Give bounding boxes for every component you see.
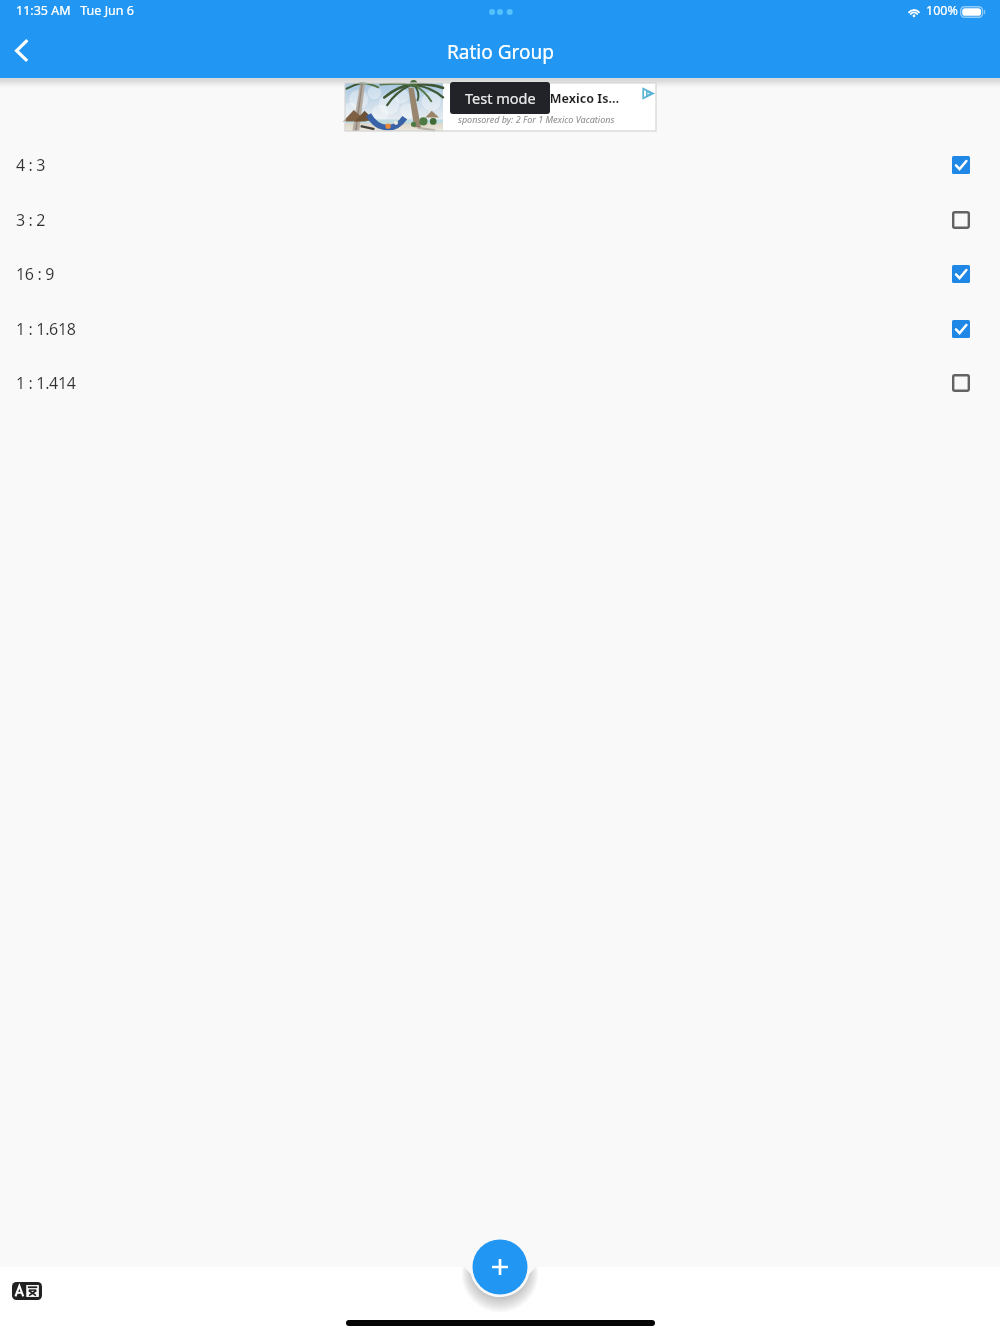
staticText: 1 : 1.618 bbox=[16, 318, 76, 340]
staticText: 100% bbox=[926, 2, 958, 19]
staticText: Flights to Mexico Is… bbox=[488, 90, 620, 107]
button[interactable]: 1 : 1.618 bbox=[0, 301, 1000, 356]
button[interactable]: Flights to Mexico Is… bbox=[345, 83, 656, 131]
button[interactable]: Translate bbox=[12, 1282, 42, 1300]
button[interactable]: 16 : 9 bbox=[0, 246, 1000, 301]
button[interactable]: 3 : 2 bbox=[0, 192, 1000, 247]
button[interactable]: Back bbox=[0, 27, 44, 73]
staticText: Ratio Group bbox=[447, 39, 554, 65]
staticText: 1 : 1.414 bbox=[16, 372, 76, 394]
staticText: 4 : 3 bbox=[16, 154, 46, 176]
button[interactable]: Add bbox=[473, 1240, 527, 1294]
staticText: 16 : 9 bbox=[16, 263, 54, 285]
staticText: 3 : 2 bbox=[16, 209, 46, 231]
button[interactable]: 1 : 1.414 bbox=[0, 355, 1000, 410]
staticText: sponsored by: 2 For 1 Mexico Vacations bbox=[458, 113, 615, 125]
button[interactable]: 4 : 3 bbox=[0, 137, 1000, 192]
staticText: 11:35 AM Tue Jun 6 bbox=[16, 2, 134, 19]
staticText: Test mode bbox=[465, 88, 536, 108]
